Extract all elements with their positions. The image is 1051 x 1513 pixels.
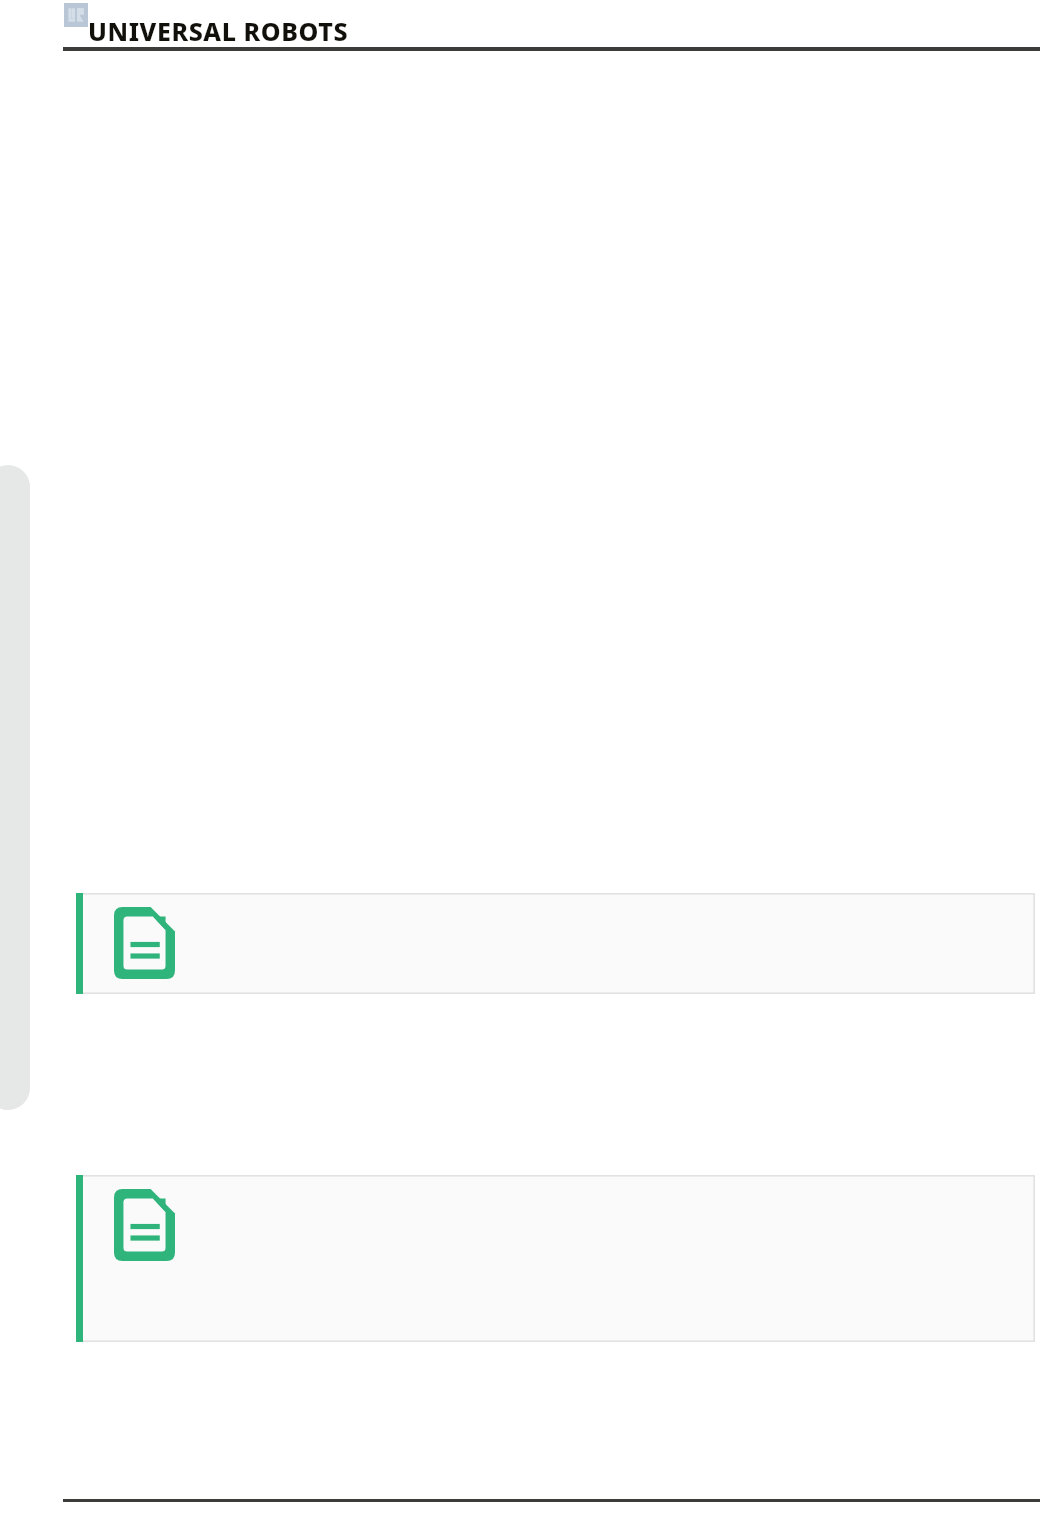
button[interactable]: Universal Robots logo — [64, 3, 88, 27]
button[interactable]: Note — [76, 1175, 1035, 1342]
other: Note — [114, 1189, 175, 1261]
other: Note — [114, 907, 175, 979]
button[interactable]: Note — [76, 893, 1035, 994]
button[interactable]: UNIVERSAL ROBOTS — [88, 14, 349, 48]
staticText: UNIVERSAL ROBOTS — [88, 14, 349, 48]
